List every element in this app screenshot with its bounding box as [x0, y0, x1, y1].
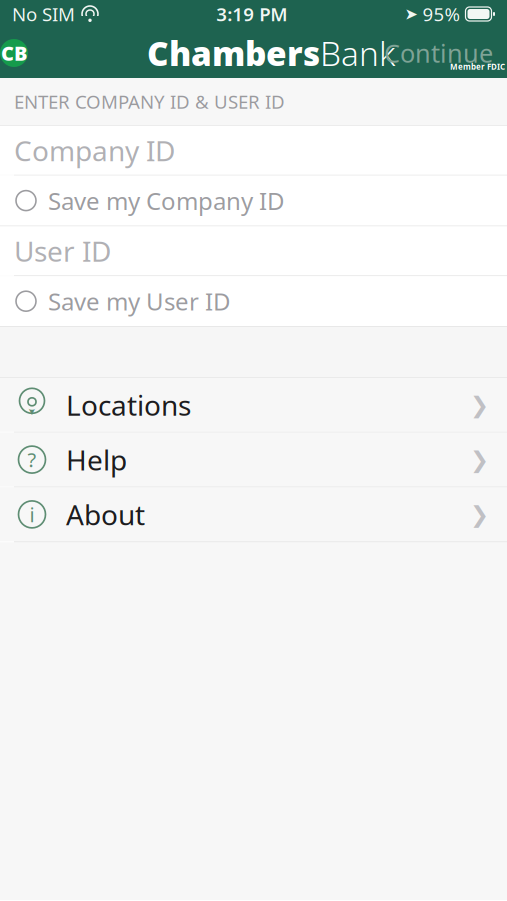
staticText: 95%	[422, 2, 460, 26]
button[interactable]: Save my Company ID	[0, 176, 507, 226]
button[interactable]: ?	[0, 433, 507, 487]
staticText: Member FDIC	[450, 61, 505, 72]
staticText: ❯	[470, 392, 489, 418]
staticText: Continue	[384, 36, 493, 70]
staticText: ❯	[470, 501, 489, 527]
staticText: ➤	[404, 5, 417, 23]
staticText: Help	[66, 441, 127, 478]
staticText: ▾	[26, 396, 37, 420]
staticText: ❯	[470, 447, 489, 472]
staticText: No SIM	[12, 2, 75, 26]
staticText: Chambers	[147, 31, 320, 75]
staticText: 3:19 PM	[216, 2, 287, 26]
staticText: i	[29, 501, 34, 528]
staticText: Save my User ID	[48, 285, 231, 317]
button[interactable]: ▾	[0, 378, 507, 433]
staticText: Company ID	[14, 132, 175, 169]
staticText: User ID	[14, 232, 111, 269]
button[interactable]: Save my User ID	[0, 276, 507, 326]
staticText: ENTER COMPANY ID & USER ID	[14, 89, 285, 114]
button[interactable]: i	[0, 487, 507, 542]
staticText: Save my Company ID	[48, 185, 285, 217]
staticText: Bank	[320, 31, 395, 75]
staticText: CB	[1, 40, 27, 66]
staticText: ?	[27, 446, 36, 473]
staticText: About	[66, 496, 145, 533]
button[interactable]: Continue	[370, 31, 507, 75]
staticText: Locations	[66, 386, 191, 423]
